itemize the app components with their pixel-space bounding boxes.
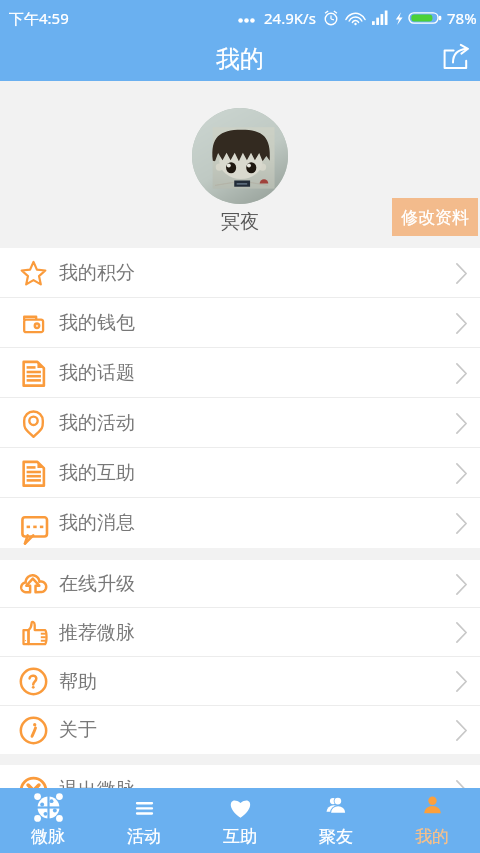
staticText: 帮助 <box>59 670 97 694</box>
button[interactable]: Avatar <box>192 108 288 204</box>
button[interactable]: 我的钱包 <box>0 298 480 348</box>
button[interactable]: Share <box>432 36 480 81</box>
staticText: 微脉 <box>31 826 65 847</box>
button[interactable]: 微脉 <box>0 788 96 853</box>
staticText: 我的互助 <box>59 461 135 485</box>
staticText: 我的积分 <box>59 261 135 285</box>
button[interactable]: 我的 <box>384 788 480 853</box>
button[interactable]: 我的活动 <box>0 398 480 448</box>
staticText: 活动 <box>127 826 161 847</box>
button[interactable]: 互助 <box>192 788 288 853</box>
staticText: 我的话题 <box>59 361 135 385</box>
button[interactable]: 聚友 <box>288 788 384 853</box>
button[interactable]: 退出微脉 <box>0 765 480 815</box>
button[interactable]: 推荐微脉 <box>0 608 480 657</box>
staticText: 在线升级 <box>59 572 135 596</box>
button[interactable]: 我的消息 <box>0 498 480 548</box>
staticText: 我的消息 <box>59 511 135 535</box>
staticText: 互助 <box>223 826 257 847</box>
staticText: 退出微脉 <box>59 778 135 802</box>
staticText: 我的活动 <box>59 411 135 435</box>
staticText: 78% <box>447 8 477 28</box>
staticText: 聚友 <box>319 826 353 847</box>
staticText: 推荐微脉 <box>59 621 135 645</box>
staticText: 我的钱包 <box>59 311 135 335</box>
button[interactable]: 活动 <box>96 788 192 853</box>
staticText: 24.9K/s <box>264 8 316 28</box>
staticText: 我的 <box>415 826 449 847</box>
button[interactable]: 我的互助 <box>0 448 480 498</box>
button[interactable]: 在线升级 <box>0 560 480 608</box>
button[interactable]: 帮助 <box>0 657 480 706</box>
button[interactable]: 修改资料 <box>392 198 478 236</box>
button[interactable]: 我的话题 <box>0 348 480 398</box>
button[interactable]: 关于 <box>0 706 480 754</box>
staticText: 我的 <box>216 44 264 74</box>
staticText: 冥夜 <box>221 210 259 234</box>
staticText: 下午4:59 <box>9 8 69 28</box>
staticText: 关于 <box>59 718 97 742</box>
staticText: 修改资料 <box>401 207 469 228</box>
button[interactable]: 我的积分 <box>0 248 480 298</box>
